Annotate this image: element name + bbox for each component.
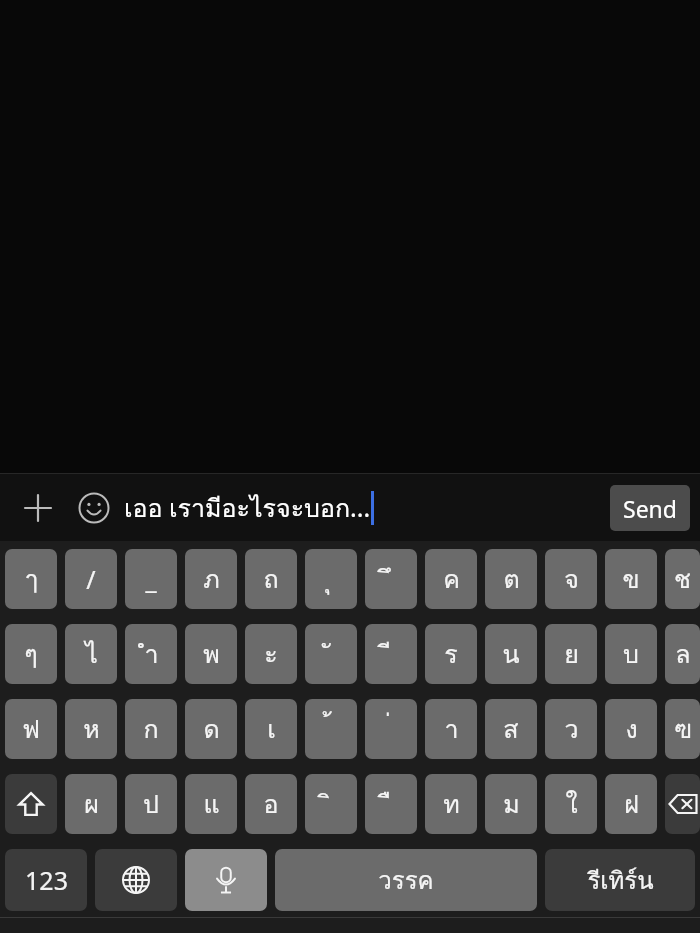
staticText: ย xyxy=(564,634,579,674)
button[interactable]: เ xyxy=(245,699,297,759)
staticText: Send xyxy=(623,493,677,524)
staticText: ว xyxy=(564,709,579,749)
staticText: ป xyxy=(143,784,159,824)
staticText: อ xyxy=(263,784,279,824)
staticText: ผ xyxy=(84,784,99,824)
button[interactable]: Add attachment xyxy=(16,486,60,530)
staticText: า xyxy=(444,709,459,749)
staticText: ข xyxy=(622,559,640,599)
button[interactable]: _ xyxy=(125,549,177,609)
button[interactable]: น xyxy=(485,624,537,684)
button[interactable]: Send xyxy=(610,485,690,531)
button[interactable]: ก xyxy=(125,699,177,759)
button[interactable]: ื xyxy=(365,774,417,834)
staticText: แ xyxy=(203,784,220,824)
staticText: 123 xyxy=(25,863,68,897)
button[interactable]: ง xyxy=(605,699,657,759)
staticText: ๅ xyxy=(25,559,38,599)
button[interactable]: ไ xyxy=(65,624,117,684)
staticText: ง xyxy=(625,709,638,749)
button[interactable]: 123 xyxy=(5,849,87,911)
button[interactable]: ฃ xyxy=(665,699,700,759)
button[interactable]: ด xyxy=(185,699,237,759)
button[interactable]: ่ xyxy=(365,699,417,759)
button[interactable]: ะ xyxy=(245,624,297,684)
button[interactable]: ถ xyxy=(245,549,297,609)
button[interactable]: Emoji xyxy=(72,486,116,530)
button[interactable]: ๆ xyxy=(5,624,57,684)
button[interactable]: ุ xyxy=(305,549,357,609)
button[interactable]: ี xyxy=(365,624,417,684)
staticText: ะ xyxy=(264,634,278,674)
button[interactable]: ย xyxy=(545,624,597,684)
staticText: ล xyxy=(675,634,691,674)
staticText: เ xyxy=(267,709,276,749)
button[interactable]: ล xyxy=(665,624,700,684)
staticText: ไ xyxy=(85,634,98,674)
staticText: ร xyxy=(444,634,458,674)
button[interactable]: ส xyxy=(485,699,537,759)
button[interactable]: ม xyxy=(485,774,537,834)
button[interactable]: ฝ xyxy=(605,774,657,834)
button[interactable]: ค xyxy=(425,549,477,609)
button[interactable]: ใ xyxy=(545,774,597,834)
staticText: ฟ xyxy=(22,709,40,749)
staticText: เออ เรามีอะไรจะบอก... xyxy=(124,488,371,528)
button[interactable]: วรรค xyxy=(275,849,537,911)
button[interactable]: ร xyxy=(425,624,477,684)
staticText: รีเทิร์น xyxy=(587,861,654,899)
button[interactable]: อ xyxy=(245,774,297,834)
button[interactable]: ต xyxy=(485,549,537,609)
button[interactable]: ท xyxy=(425,774,477,834)
button[interactable]: จ xyxy=(545,549,597,609)
button[interactable]: ๅ xyxy=(5,549,57,609)
staticText: ด xyxy=(203,709,220,749)
staticText: ถ xyxy=(263,559,279,599)
button[interactable]: บ xyxy=(605,624,657,684)
button[interactable]: Change keyboard language xyxy=(95,849,177,911)
button[interactable]: แ xyxy=(185,774,237,834)
button[interactable]: ช xyxy=(665,549,700,609)
button[interactable]: ข xyxy=(605,549,657,609)
staticText: ช xyxy=(674,559,691,599)
button[interactable]: า xyxy=(425,699,477,759)
button[interactable]: ภ xyxy=(185,549,237,609)
staticText: ท xyxy=(443,784,460,824)
button[interactable]: / xyxy=(65,549,117,609)
button[interactable]: ำ xyxy=(125,624,177,684)
staticText: ภ xyxy=(203,559,220,599)
button[interactable]: ว xyxy=(545,699,597,759)
staticText: ม xyxy=(503,784,520,824)
staticText: บ xyxy=(623,634,639,674)
staticText: ส xyxy=(503,709,519,749)
staticText: _ xyxy=(145,562,157,596)
staticText: ำ xyxy=(144,634,159,674)
button[interactable]: Backspace xyxy=(665,774,700,834)
staticText: ฝ xyxy=(624,784,639,824)
staticText: วรรค xyxy=(378,861,434,899)
staticText: ๆ xyxy=(24,634,38,674)
button[interactable]: ป xyxy=(125,774,177,834)
staticText: ใ xyxy=(565,784,578,824)
button[interactable]: ั xyxy=(305,624,357,684)
button[interactable]: Shift xyxy=(5,774,57,834)
button[interactable]: ฟ xyxy=(5,699,57,759)
button[interactable]: Voice input xyxy=(185,849,267,911)
button[interactable]: ้ xyxy=(305,699,357,759)
button[interactable]: ึ xyxy=(365,549,417,609)
button[interactable]: รีเทิร์น xyxy=(545,849,695,911)
staticText: ต xyxy=(503,559,520,599)
button[interactable]: ิ xyxy=(305,774,357,834)
staticText: พ xyxy=(203,634,220,674)
button[interactable]: ห xyxy=(65,699,117,759)
staticText: ฃ xyxy=(674,709,692,749)
button[interactable]: ผ xyxy=(65,774,117,834)
button[interactable]: พ xyxy=(185,624,237,684)
staticText: น xyxy=(502,634,520,674)
staticText: ก xyxy=(143,709,159,749)
staticText: ห xyxy=(83,709,100,749)
staticText: ค xyxy=(443,559,460,599)
staticText: จ xyxy=(564,559,579,599)
staticText: / xyxy=(86,562,96,596)
